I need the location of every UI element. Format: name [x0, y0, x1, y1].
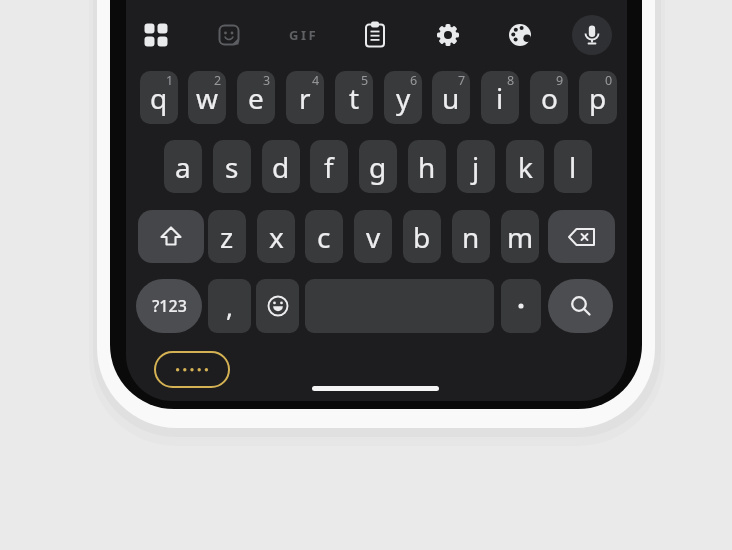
staticText: 1 — [166, 72, 174, 89]
button[interactable]: t — [335, 71, 373, 124]
button[interactable] — [364, 21, 386, 48]
button[interactable]: q — [140, 71, 178, 124]
button[interactable] — [144, 23, 168, 47]
button[interactable]: o — [530, 71, 568, 124]
button[interactable]: GIF — [284, 26, 324, 44]
staticText: d — [272, 148, 290, 186]
button[interactable]: ?123 — [136, 279, 202, 333]
button[interactable]: y — [384, 71, 422, 124]
button[interactable] — [548, 210, 615, 263]
button[interactable]: r — [286, 71, 324, 124]
button[interactable]: , — [208, 279, 251, 333]
button[interactable] — [138, 210, 204, 263]
button[interactable]: a — [164, 140, 202, 193]
staticText: u — [442, 79, 460, 117]
staticText: s — [225, 148, 239, 186]
staticText: o — [541, 79, 558, 117]
staticText: v — [366, 218, 381, 256]
staticText: 7 — [458, 72, 466, 89]
staticText: e — [248, 79, 264, 117]
button[interactable]: k — [506, 140, 544, 193]
button[interactable]: z — [208, 210, 246, 263]
staticText: m — [507, 218, 534, 256]
staticText: t — [349, 79, 360, 117]
button[interactable]: v — [354, 210, 392, 263]
button[interactable]: m — [501, 210, 539, 263]
staticText: j — [472, 148, 480, 186]
staticText: y — [396, 79, 411, 117]
staticText: , — [226, 289, 233, 324]
staticText: b — [413, 218, 431, 256]
staticText: 5 — [361, 72, 369, 89]
button[interactable]: n — [452, 210, 490, 263]
button[interactable] — [218, 24, 240, 46]
button[interactable]: d — [262, 140, 300, 193]
button[interactable]: l — [554, 140, 592, 193]
staticText: ?123 — [152, 295, 187, 317]
staticText: h — [418, 148, 436, 186]
staticText: z — [220, 218, 234, 256]
button[interactable]: c — [305, 210, 343, 263]
button[interactable]: b — [403, 210, 441, 263]
button[interactable]: f — [310, 140, 348, 193]
staticText: 3 — [263, 72, 271, 89]
button[interactable]: w — [188, 71, 226, 124]
button[interactable] — [548, 279, 613, 333]
button[interactable]: i — [481, 71, 519, 124]
staticText: 6 — [410, 72, 418, 89]
button[interactable]: u — [432, 71, 470, 124]
button[interactable] — [256, 279, 299, 333]
staticText: 2 — [214, 72, 222, 89]
button[interactable] — [154, 351, 230, 388]
staticText: n — [462, 218, 480, 256]
staticText: 9 — [556, 72, 564, 89]
staticText: a — [175, 148, 191, 186]
button[interactable]: h — [408, 140, 446, 193]
staticText: r — [299, 79, 311, 117]
button[interactable] — [435, 22, 461, 48]
staticText: l — [569, 148, 577, 186]
staticText: 8 — [507, 72, 515, 89]
staticText: q — [150, 79, 168, 117]
staticText: k — [518, 148, 533, 186]
button[interactable] — [507, 22, 533, 48]
button[interactable]: j — [457, 140, 495, 193]
staticText: f — [324, 148, 334, 186]
staticText: 0 — [605, 72, 613, 89]
button[interactable]: x — [257, 210, 295, 263]
staticText: i — [496, 79, 504, 117]
staticText: c — [317, 218, 331, 256]
staticText: 4 — [312, 72, 320, 89]
button[interactable] — [501, 279, 541, 333]
button[interactable] — [572, 15, 612, 55]
staticText: p — [589, 79, 607, 117]
staticText: w — [196, 79, 219, 117]
button[interactable]: g — [359, 140, 397, 193]
staticText: GIF — [289, 26, 319, 44]
button[interactable]: p — [579, 71, 617, 124]
staticText: g — [369, 148, 387, 186]
staticText: x — [269, 218, 284, 256]
button[interactable]: e — [237, 71, 275, 124]
button[interactable]: s — [213, 140, 251, 193]
